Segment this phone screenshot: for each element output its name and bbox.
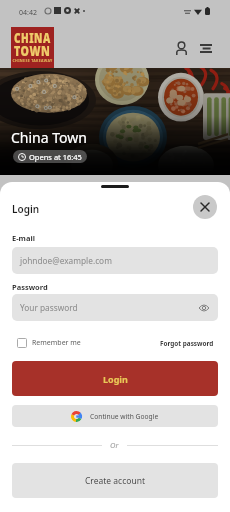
staticText: Create account: [85, 475, 145, 487]
staticText: CHINESE TAKEAWAY: [12, 58, 53, 63]
button[interactable]: Continue with Google: [12, 405, 218, 427]
staticText: China Town: [11, 128, 87, 147]
staticText: Forgot password: [160, 339, 214, 348]
button[interactable]: Remember me: [12, 336, 81, 350]
staticText: johndoe@example.com: [20, 255, 112, 266]
button[interactable]: China Town home: [11, 27, 54, 69]
staticText: Your password: [20, 302, 78, 313]
button[interactable]: Your password: [12, 294, 218, 321]
staticText: Login: [103, 373, 128, 385]
button[interactable]: Account: [167, 34, 195, 62]
button[interactable]: Opens at 16:45: [13, 150, 87, 163]
staticText: 04:42: [19, 8, 37, 18]
button[interactable]: johndoe@example.com: [12, 247, 218, 274]
button[interactable]: Login: [12, 361, 218, 396]
staticText: Or: [110, 440, 119, 450]
button[interactable]: Forgot password: [160, 337, 218, 350]
button[interactable]: Menu: [192, 34, 220, 62]
button[interactable]: Show password: [198, 302, 210, 314]
staticText: Password: [12, 282, 48, 292]
staticText: TOWN: [14, 40, 51, 60]
staticText: Remember me: [32, 338, 81, 348]
staticText: Opens at 16:45: [29, 152, 82, 162]
staticText: E-mail: [12, 233, 35, 243]
staticText: CHINA: [14, 27, 51, 47]
button[interactable]: Create account: [12, 463, 218, 498]
button[interactable]: Close: [193, 195, 217, 219]
staticText: Login: [12, 202, 40, 216]
staticText: Continue with Google: [90, 412, 159, 421]
